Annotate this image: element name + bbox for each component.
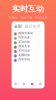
button[interactable]: 最近使用 [24, 24, 40, 29]
staticText: 互动白板 [18, 40, 30, 43]
staticText: 最近使用 [24, 24, 40, 29]
staticText: 实时消息 [18, 49, 30, 52]
staticText: 正在直播 [18, 35, 22, 36]
staticText: 全部 [14, 24, 22, 29]
staticText: 已开启 [18, 44, 21, 45]
staticText: 语音连麦 [18, 36, 30, 39]
button[interactable]: Tab 3 [28, 79, 36, 88]
button[interactable]: 美颜特效 [11, 54, 44, 58]
button[interactable]: Tab 1 [11, 79, 20, 88]
button[interactable]: Tab 4 [36, 79, 44, 88]
staticText: 音视频 · 互动白板 · 即时消息 [8, 16, 47, 19]
button[interactable]: Tab 2 [20, 79, 28, 88]
button[interactable]: 视频直播间 [11, 32, 44, 36]
button[interactable]: 互动白板 [11, 41, 44, 45]
button[interactable]: 全部 [14, 24, 22, 29]
staticText: 未开启 [18, 48, 21, 50]
staticText: 美颜特效 [18, 53, 30, 57]
staticText: 视频直播间 [18, 31, 33, 35]
button[interactable]: 语音连麦 [11, 36, 44, 41]
staticText: 已开启 [18, 57, 21, 58]
button[interactable]: 实时消息 [11, 49, 44, 54]
staticText: 内容审核 [18, 58, 30, 61]
button[interactable]: 屏幕共享 [11, 45, 44, 49]
staticText: 屏幕共享 [18, 45, 30, 48]
staticText: 12 条新消息 [18, 52, 24, 54]
staticText: 实时互动 [12, 4, 44, 14]
button[interactable]: 内容审核 [11, 58, 44, 63]
staticText: 3 人在线 [18, 39, 22, 41]
